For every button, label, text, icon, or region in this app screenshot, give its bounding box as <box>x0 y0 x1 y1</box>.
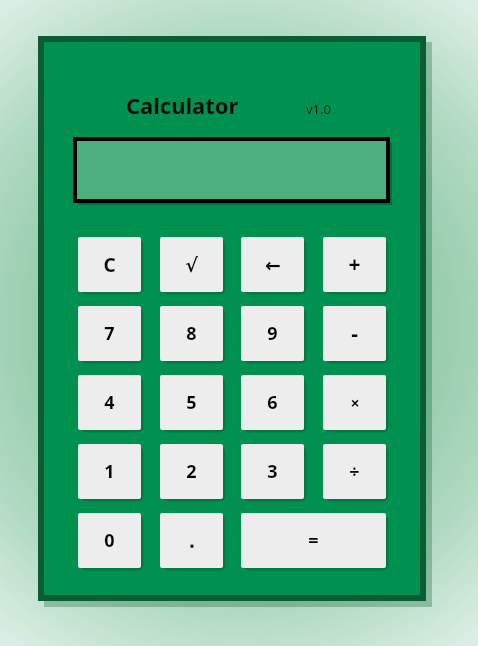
button[interactable]: Add <box>323 237 386 292</box>
staticText: 6 <box>267 390 278 415</box>
staticText: - <box>351 319 358 348</box>
button[interactable]: Subtract <box>323 306 386 361</box>
staticText: 4 <box>104 390 115 415</box>
button[interactable]: Multiply <box>323 375 386 430</box>
button[interactable]: 4 <box>78 375 141 430</box>
button[interactable]: Divide <box>323 444 386 499</box>
button[interactable]: 3 <box>241 444 304 499</box>
button[interactable]: . <box>160 513 223 568</box>
button[interactable]: 7 <box>78 306 141 361</box>
staticText: 5 <box>186 390 197 415</box>
staticText: 7 <box>104 321 115 346</box>
staticText: 1 <box>104 459 115 484</box>
staticText: ÷ <box>349 459 360 484</box>
button[interactable]: 5 <box>160 375 223 430</box>
button[interactable]: Equals <box>241 513 386 568</box>
staticText: × <box>350 392 360 414</box>
staticText: C <box>103 252 116 278</box>
button[interactable]: 8 <box>160 306 223 361</box>
button[interactable]: Square root <box>160 237 223 292</box>
staticText: + <box>348 250 361 279</box>
staticText: ← <box>265 254 281 276</box>
staticText: v1.0 <box>306 100 366 118</box>
staticText: 3 <box>267 459 278 484</box>
button[interactable]: 1 <box>78 444 141 499</box>
staticText: Calculator <box>126 90 276 120</box>
button[interactable]: 9 <box>241 306 304 361</box>
staticText: 0 <box>104 528 115 553</box>
staticText: 9 <box>267 321 278 346</box>
staticText: = <box>308 528 319 553</box>
button[interactable]: 2 <box>160 444 223 499</box>
button[interactable]: 0 <box>78 513 141 568</box>
staticText: . <box>189 526 195 555</box>
staticText: 8 <box>186 321 197 346</box>
staticText: √ <box>185 254 198 276</box>
button[interactable]: Backspace <box>241 237 304 292</box>
button[interactable]: Clear <box>78 237 141 292</box>
button[interactable]: 6 <box>241 375 304 430</box>
staticText: 2 <box>186 459 197 484</box>
